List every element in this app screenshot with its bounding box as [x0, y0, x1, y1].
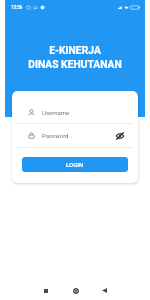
staticText: 13:56: [11, 5, 23, 10]
button[interactable]: Back: [96, 282, 113, 299]
button[interactable]: Recent apps: [37, 282, 54, 299]
staticText: DINAS KEHUTANAN: [28, 58, 122, 70]
staticText: Username: [42, 109, 70, 116]
staticText: Password: [42, 132, 69, 139]
button[interactable]: LOGIN: [22, 157, 128, 172]
button[interactable]: Home: [67, 282, 84, 299]
staticText: E-KINERJA: [49, 44, 101, 56]
button[interactable]: Username: [12, 101, 138, 123]
staticText: LOGIN: [66, 161, 84, 168]
button[interactable]: Password: [12, 124, 138, 147]
